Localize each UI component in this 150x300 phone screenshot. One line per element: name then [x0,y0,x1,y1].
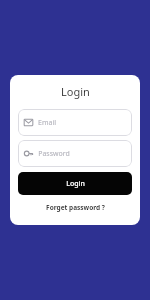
button[interactable]: Email [18,109,132,136]
button[interactable]: Login [18,172,132,195]
staticText: Login [66,179,85,189]
staticText: Password [38,149,70,159]
staticText: Login [61,84,90,99]
other: Email [24,118,33,127]
staticText: Email [38,118,56,128]
other: Password [24,149,33,158]
button[interactable]: Password [18,140,132,167]
button[interactable]: Forget password ? [17,201,133,214]
staticText: Forget password ? [46,203,105,212]
